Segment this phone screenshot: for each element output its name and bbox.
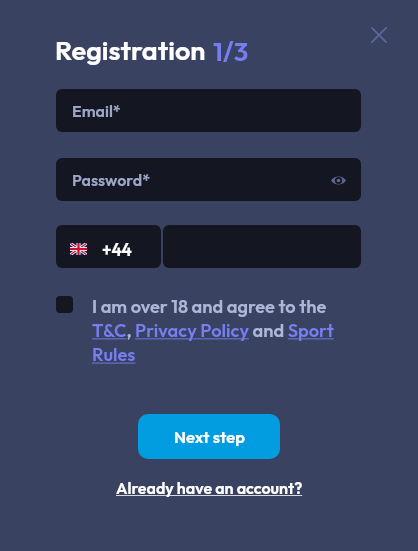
- staticText: Registration: [55, 33, 206, 67]
- button[interactable]: Password*: [56, 158, 361, 201]
- button[interactable]: Country code +44: [56, 225, 161, 268]
- button[interactable]: Show password: [325, 167, 351, 193]
- button[interactable]: Next step: [138, 414, 280, 459]
- button[interactable]: Phone number: [163, 225, 361, 268]
- button[interactable]: Email*: [56, 89, 361, 132]
- button[interactable]: Already have an account?: [110, 476, 308, 500]
- staticText: Next step: [174, 426, 245, 447]
- staticText: Email*: [72, 101, 121, 121]
- staticText: +44: [102, 239, 132, 260]
- staticText: Password*: [72, 170, 151, 190]
- staticText: 1/3: [213, 34, 249, 68]
- staticText: Already have an account?: [116, 478, 303, 498]
- button[interactable]: I am over 18 and agree to the terms: [56, 296, 73, 313]
- button[interactable]: I am over 18 and agree to the T&C, Priva…: [92, 295, 344, 366]
- button[interactable]: Close: [364, 20, 394, 50]
